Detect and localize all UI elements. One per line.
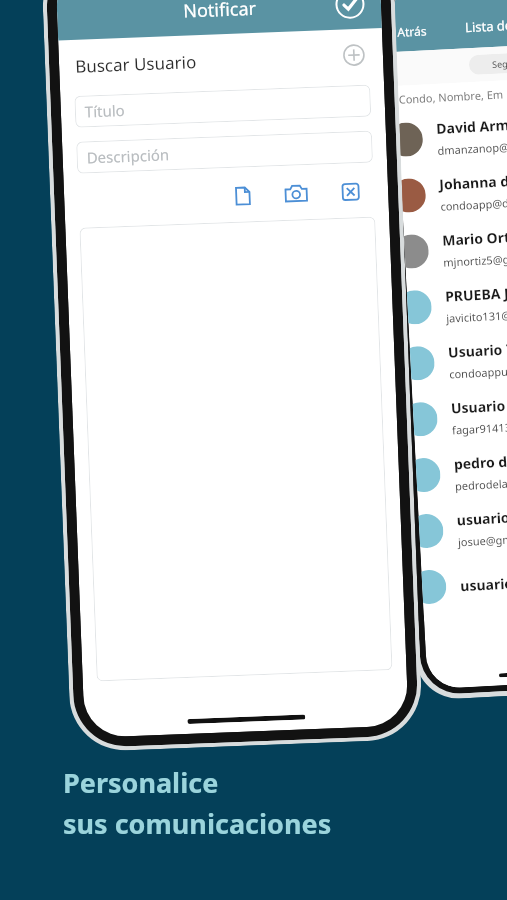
staticText: condoappusuar [449, 362, 507, 382]
button[interactable]: Adjuntar archivo [224, 177, 261, 214]
staticText: condoapp@dor [440, 195, 507, 214]
button[interactable]: Usuario Corr [412, 382, 507, 447]
button[interactable]: Título [74, 84, 371, 128]
staticText: usuario 1 [456, 507, 507, 529]
button[interactable]: David Arman [397, 103, 507, 168]
staticText: Notificar [183, 0, 256, 24]
button[interactable]: Usuario 7 [409, 326, 507, 391]
staticText: Seguridad [492, 56, 507, 70]
staticText: usuario 2 [460, 573, 507, 595]
staticText: javicito131@hot [446, 306, 507, 326]
button[interactable]: Johanna de M [400, 159, 507, 224]
staticText: Título [84, 100, 125, 121]
staticText: Atrás [397, 22, 428, 40]
staticText: Personalice [63, 764, 219, 801]
button[interactable]: Seguridad [468, 50, 507, 75]
button[interactable]: Agregar [340, 42, 367, 69]
staticText: mjnortiz5@gma [443, 250, 507, 270]
staticText: pedro de la m [453, 449, 507, 473]
staticText: josue@gmail.co [458, 530, 507, 549]
button[interactable]: Mario Ortiz [403, 214, 507, 280]
button[interactable]: Cancelar [331, 173, 369, 210]
staticText: David Arman [436, 114, 507, 138]
staticText: Descripción [86, 144, 170, 167]
button[interactable]: Descripción [76, 130, 373, 174]
staticText: Lista de [465, 16, 507, 36]
button[interactable]: pedro de la m [415, 438, 507, 503]
staticText: PRUEBA JAV [445, 282, 507, 306]
staticText: fagar91413@ro [452, 418, 507, 438]
staticText: dmanzanop@g [437, 139, 507, 158]
staticText: Buscar Usuario [75, 50, 197, 78]
button[interactable]: usuario 2 [421, 550, 507, 615]
staticText: sus comunicaciones [63, 805, 332, 842]
staticText: pedrodelamar@ [455, 474, 507, 493]
button[interactable]: usuario 1 [418, 494, 507, 559]
staticText: Johanna de M [439, 170, 507, 194]
button[interactable]: Cámara [277, 175, 315, 212]
staticText: Mario Ortiz [442, 227, 507, 250]
button[interactable]: Buscar Usuario [58, 28, 384, 92]
staticText: Condo, Nombre, Em [398, 86, 504, 107]
button[interactable]: PRUEBA JAV [406, 270, 507, 336]
button[interactable] [79, 216, 392, 681]
staticText: Usuario Corr [450, 394, 507, 417]
button[interactable]: Enviar [332, 0, 368, 22]
staticText: Usuario 7 [447, 339, 507, 362]
